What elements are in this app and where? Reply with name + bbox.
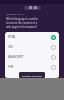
staticText: HTML (8, 35, 51, 39)
staticText: SUBMIT ANSWER (22, 74, 42, 77)
other: Not selected (51, 45, 56, 50)
button[interactable]: 00 : 30 (24, 6, 41, 10)
staticText: PHP (8, 65, 51, 69)
staticText: structure the content of a (6, 21, 38, 25)
button[interactable]: PHP (5, 62, 59, 72)
button[interactable]: JAVASCRIPT (5, 52, 59, 62)
staticText: web page in the browser? (6, 25, 38, 29)
other: Not selected (51, 65, 56, 70)
button[interactable]: SUBMIT ANSWER (19, 72, 45, 78)
staticText: Question 1 of 10 (6, 13, 24, 16)
staticText: CSS (8, 45, 51, 49)
button[interactable]: CSS (5, 42, 59, 52)
staticText: 00 : 30 (29, 6, 37, 10)
other: Not selected (51, 55, 56, 60)
other: Selected (51, 35, 56, 40)
staticText: Which language is used to (6, 17, 38, 21)
staticText: JAVASCRIPT (8, 55, 51, 59)
button[interactable]: HTML (5, 32, 59, 42)
